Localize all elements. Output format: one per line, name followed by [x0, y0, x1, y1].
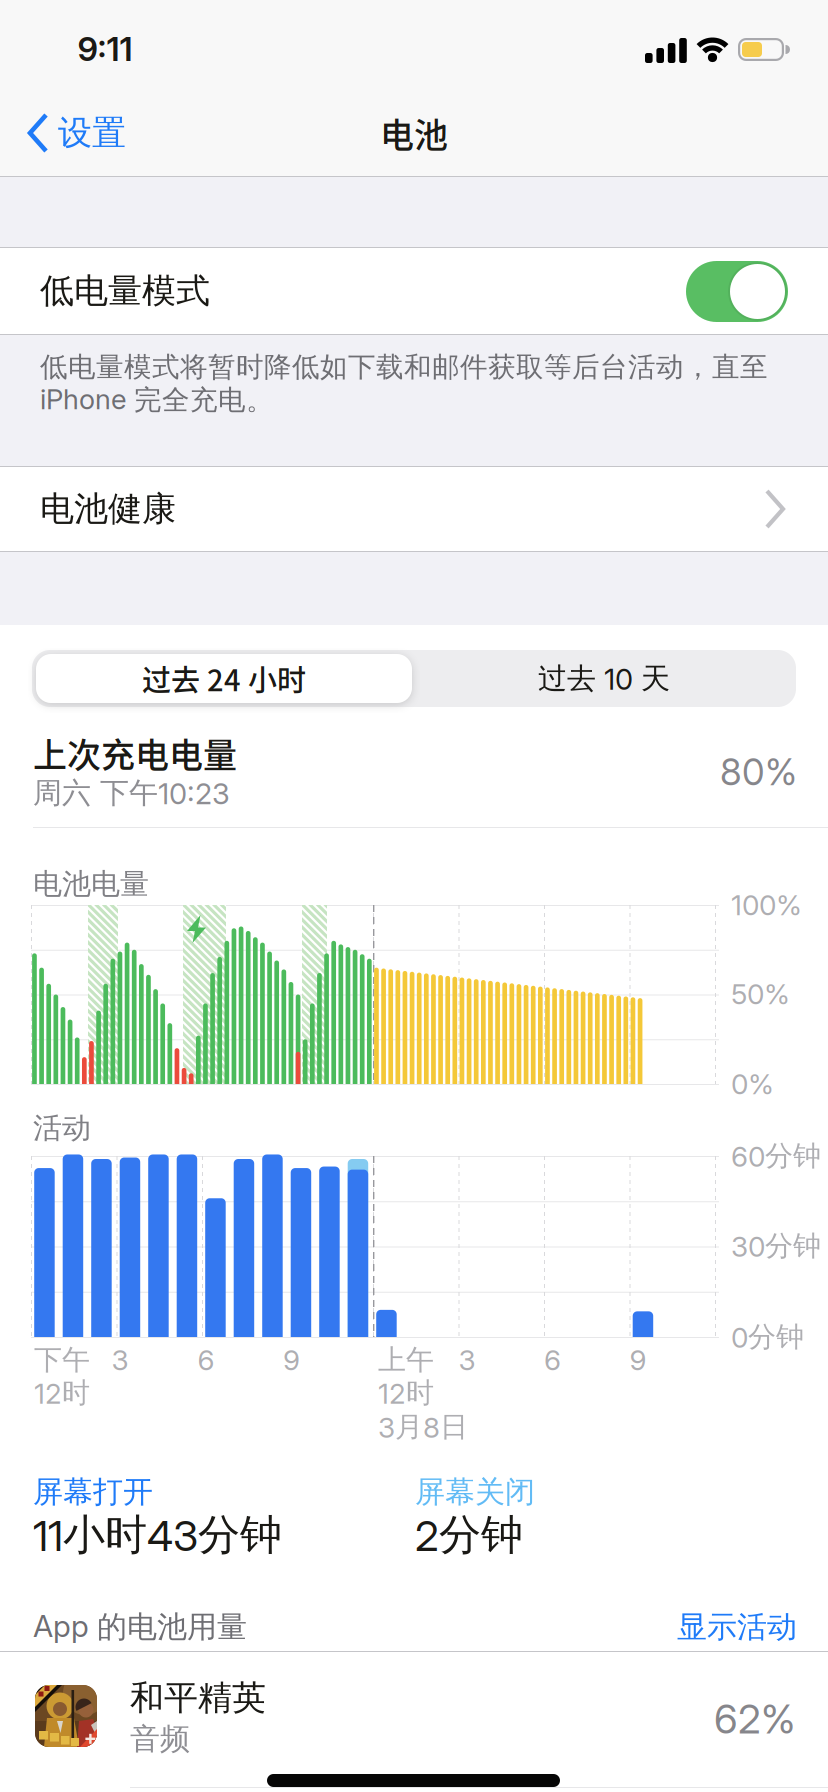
staticText: 3: [458, 1343, 475, 1377]
staticText: 9: [629, 1343, 646, 1377]
staticText: 3: [111, 1343, 128, 1377]
staticText: 0%: [731, 1067, 774, 1101]
staticText: 9:11: [77, 29, 132, 69]
staticText: 电池: [380, 108, 448, 158]
staticText: 上午: [378, 1342, 434, 1378]
button[interactable]: 设置: [28, 111, 126, 155]
staticText: 周六 下午10:23: [33, 775, 230, 811]
staticText: 和平精英: [130, 1677, 266, 1719]
staticText: 音频: [130, 1720, 190, 1758]
button[interactable]: 和平精英: [0, 1662, 828, 1788]
staticText: 过去 10 天: [538, 660, 670, 697]
staticText: 6: [197, 1343, 214, 1377]
staticText: 2分钟: [415, 1508, 523, 1561]
staticText: 上次充电电量: [33, 728, 237, 778]
button[interactable]: 过去 24 小时: [36, 654, 412, 703]
staticText: 屏幕打开: [33, 1473, 153, 1511]
staticText: 3月8日: [378, 1409, 468, 1445]
staticText: 显示活动: [677, 1608, 797, 1646]
staticText: 30分钟: [731, 1228, 821, 1264]
staticText: 62%: [714, 1695, 795, 1743]
staticText: 80%: [720, 750, 797, 794]
staticText: 12时: [378, 1375, 434, 1411]
button[interactable]: 电池健康: [0, 467, 828, 551]
staticText: 11小时43分钟: [33, 1508, 282, 1561]
staticText: 活动: [33, 1110, 91, 1146]
staticText: iPhone 完全充电。: [40, 383, 274, 417]
staticText: 100%: [731, 888, 802, 922]
staticText: 0分钟: [731, 1319, 804, 1355]
staticText: 6: [544, 1343, 561, 1377]
staticText: 过去 24 小时: [142, 657, 306, 699]
staticText: 下午: [34, 1342, 90, 1378]
staticText: 低电量模式将暂时降低如下载和邮件获取等后台活动，直至: [40, 350, 768, 384]
staticText: 设置: [58, 112, 126, 154]
staticText: 50%: [731, 977, 790, 1011]
button[interactable]: 低电量模式: [686, 261, 788, 322]
staticText: 屏幕关闭: [415, 1473, 535, 1511]
staticText: 电池电量: [33, 866, 149, 902]
button[interactable]: 显示活动: [677, 1610, 797, 1644]
staticText: 9: [283, 1343, 300, 1377]
staticText: 60分钟: [731, 1138, 821, 1174]
button[interactable]: 过去 10 天: [416, 654, 792, 703]
staticText: 12时: [34, 1375, 90, 1411]
staticText: App 的电池用量: [33, 1608, 247, 1646]
staticText: 低电量模式: [40, 270, 210, 312]
staticText: 电池健康: [40, 488, 176, 530]
